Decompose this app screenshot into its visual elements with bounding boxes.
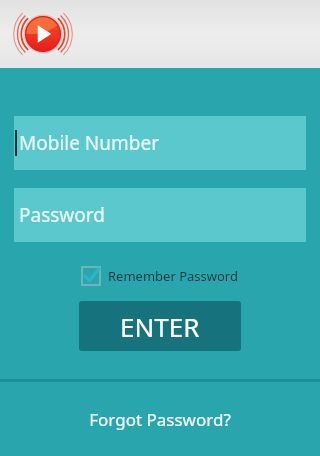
staticText: Forgot Password? [89,408,231,431]
button[interactable]: ENTER [79,301,241,351]
button[interactable]: Password [14,188,306,242]
staticText: ENTER [120,309,200,344]
button[interactable]: Remember Password [76,263,244,289]
staticText: Password [19,202,105,228]
staticText: Mobile Number [19,130,160,156]
button[interactable]: Forgot Password? [0,382,320,456]
button[interactable]: Mobile Number [14,116,306,170]
staticText: Remember Password [108,267,238,285]
other: App logo [14,5,72,63]
